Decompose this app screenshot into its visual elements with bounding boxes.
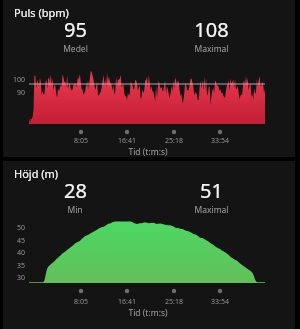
staticText: 108 xyxy=(194,16,229,43)
staticText: 35 xyxy=(17,261,26,271)
staticText: 33:54 xyxy=(206,297,234,307)
staticText: 95 xyxy=(64,16,87,43)
staticText: 50 xyxy=(17,223,26,233)
staticText: 16:41 xyxy=(113,297,141,307)
button[interactable]: 108 xyxy=(189,16,233,55)
button[interactable]: Puls (bpm) xyxy=(3,0,295,157)
staticText: Tid (t:m:s) xyxy=(113,146,183,158)
staticText: Medel xyxy=(63,43,88,55)
staticText: Puls (bpm) xyxy=(14,5,69,20)
staticText: 100 xyxy=(13,75,26,85)
button[interactable]: 95 xyxy=(53,16,97,55)
staticText: Tid (t:m:s) xyxy=(113,307,183,319)
staticText: Höjd (m) xyxy=(14,166,59,181)
staticText: 8:05 xyxy=(67,136,95,146)
button[interactable]: 28 xyxy=(53,177,97,216)
staticText: 51 xyxy=(200,177,223,204)
staticText: 16:41 xyxy=(113,136,141,146)
staticText: Maximal xyxy=(194,43,229,55)
staticText: 40 xyxy=(17,248,26,258)
staticText: 33:54 xyxy=(206,136,234,146)
staticText: 30 xyxy=(17,273,26,283)
staticText: 28 xyxy=(64,177,87,204)
staticText: 90 xyxy=(17,88,26,98)
staticText: Min xyxy=(67,204,83,216)
staticText: 45 xyxy=(17,236,26,246)
staticText: 25:18 xyxy=(160,136,188,146)
staticText: 25:18 xyxy=(160,297,188,307)
button[interactable]: 51 xyxy=(189,177,233,216)
staticText: 8:05 xyxy=(67,297,95,307)
button[interactable]: Höjd (m) xyxy=(3,161,295,329)
staticText: Maximal xyxy=(194,204,229,216)
